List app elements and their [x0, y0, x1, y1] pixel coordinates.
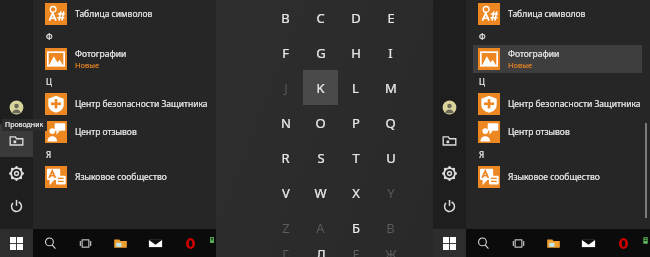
- button[interactable]: Mail: [138, 229, 173, 257]
- button[interactable]: File Explorer: [0, 124, 33, 157]
- button[interactable]: G: [303, 35, 338, 70]
- button[interactable]: Opera: [606, 229, 641, 257]
- staticText: Б: [352, 219, 360, 237]
- button[interactable]: L: [338, 70, 373, 105]
- staticText: Y: [387, 184, 395, 202]
- button[interactable]: H: [338, 35, 373, 70]
- button[interactable]: App: [208, 229, 216, 257]
- button[interactable]: Г: [268, 245, 303, 257]
- button[interactable]: Q: [373, 105, 408, 140]
- button[interactable]: Opera: [173, 229, 208, 257]
- staticText: M: [385, 79, 397, 97]
- staticText: Я: [479, 149, 485, 160]
- button[interactable]: Фотографии: [40, 45, 208, 73]
- button[interactable]: W: [303, 175, 338, 210]
- button[interactable]: Таблица символов: [473, 0, 642, 28]
- button[interactable]: Таблица символов: [40, 0, 208, 28]
- staticText: Я: [46, 149, 52, 160]
- staticText: Центр отзывов: [75, 126, 137, 138]
- staticText: K: [316, 79, 325, 97]
- button[interactable]: File Explorer: [433, 124, 466, 157]
- button[interactable]: Task view: [501, 229, 536, 257]
- button[interactable]: Settings: [0, 157, 33, 190]
- button[interactable]: T: [338, 140, 373, 175]
- staticText: N: [281, 114, 291, 132]
- button[interactable]: Task view: [68, 229, 103, 257]
- staticText: Языковое сообщество: [508, 171, 600, 183]
- button[interactable]: A: [303, 210, 338, 245]
- button[interactable]: N: [268, 105, 303, 140]
- button[interactable]: J: [268, 70, 303, 105]
- button[interactable]: Search: [466, 229, 501, 257]
- staticText: J: [284, 79, 288, 97]
- button[interactable]: Фотографии: [473, 45, 642, 73]
- button[interactable]: Б: [338, 210, 373, 245]
- button[interactable]: Ж: [373, 245, 408, 257]
- button[interactable]: Start: [433, 229, 466, 257]
- button[interactable]: D: [338, 0, 373, 35]
- button[interactable]: U: [373, 140, 408, 175]
- button[interactable]: File Explorer: [536, 229, 571, 257]
- button[interactable]: X: [338, 175, 373, 210]
- button[interactable]: F: [268, 35, 303, 70]
- button[interactable]: O: [303, 105, 338, 140]
- button[interactable]: Д: [303, 245, 338, 257]
- button[interactable]: Settings: [433, 157, 466, 190]
- button[interactable]: App: [641, 229, 650, 257]
- button[interactable]: Ц: [40, 73, 208, 90]
- staticText: Д: [316, 245, 326, 257]
- button[interactable]: Account: [433, 91, 466, 124]
- button[interactable]: K: [303, 70, 338, 105]
- staticText: P: [352, 114, 360, 132]
- button[interactable]: Я: [40, 146, 208, 163]
- staticText: U: [386, 149, 396, 167]
- staticText: B: [281, 9, 290, 27]
- staticText: L: [352, 79, 359, 97]
- staticText: R: [281, 149, 290, 167]
- staticText: Языковое сообщество: [75, 171, 167, 183]
- staticText: Таблица символов: [75, 8, 153, 20]
- staticText: X: [352, 184, 360, 202]
- button[interactable]: M: [373, 70, 408, 105]
- button[interactable]: В: [373, 210, 408, 245]
- button[interactable]: V: [268, 175, 303, 210]
- button[interactable]: File Explorer: [103, 229, 138, 257]
- staticText: Ж: [385, 245, 397, 257]
- button[interactable]: Центр безопасности Защитника W...: [40, 90, 208, 118]
- button[interactable]: Search: [33, 229, 68, 257]
- button[interactable]: Ф: [40, 28, 208, 45]
- button[interactable]: Центр отзывов: [40, 118, 208, 146]
- staticText: I: [388, 44, 393, 62]
- button[interactable]: B: [268, 0, 303, 35]
- staticText: Ц: [479, 76, 485, 87]
- staticText: Проводник: [5, 120, 44, 130]
- button[interactable]: Е: [338, 245, 373, 257]
- button[interactable]: Центр безопасности Защитника W...: [473, 90, 642, 118]
- button[interactable]: C: [303, 0, 338, 35]
- button[interactable]: Mail: [571, 229, 606, 257]
- button[interactable]: Start: [0, 229, 33, 257]
- button[interactable]: Языковое сообщество: [40, 163, 208, 191]
- staticText: Z: [282, 219, 290, 237]
- button[interactable]: Power: [0, 190, 33, 223]
- staticText: Центр безопасности Защитника W...: [508, 98, 642, 110]
- button[interactable]: P: [338, 105, 373, 140]
- button[interactable]: Я: [473, 146, 642, 163]
- button[interactable]: I: [373, 35, 408, 70]
- button[interactable]: Языковое сообщество: [473, 163, 642, 191]
- button[interactable]: R: [268, 140, 303, 175]
- staticText: Е: [352, 245, 360, 257]
- button[interactable]: Центр отзывов: [473, 118, 642, 146]
- button[interactable]: S: [303, 140, 338, 175]
- button[interactable]: E: [373, 0, 408, 35]
- button[interactable]: Z: [268, 210, 303, 245]
- button[interactable]: Account: [0, 91, 33, 124]
- button[interactable]: Ц: [473, 73, 642, 90]
- staticText: Q: [385, 114, 396, 132]
- button[interactable]: Power: [433, 190, 466, 223]
- button[interactable]: Y: [373, 175, 408, 210]
- staticText: W: [314, 184, 327, 202]
- staticText: H: [351, 44, 361, 62]
- button[interactable]: Ф: [473, 28, 642, 45]
- staticText: В: [386, 219, 395, 237]
